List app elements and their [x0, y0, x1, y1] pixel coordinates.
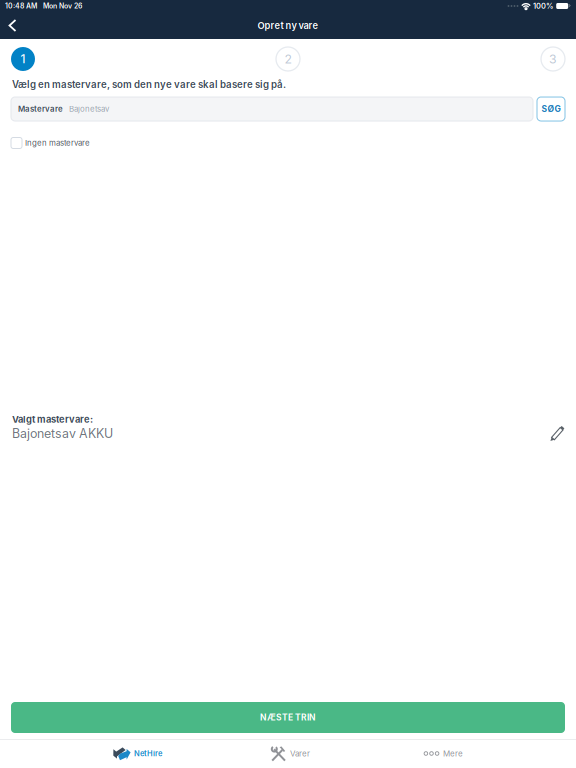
staticText: SØG — [541, 104, 560, 114]
staticText: Opret ny vare — [257, 20, 318, 31]
staticText: Valgt mastervare: — [12, 414, 93, 425]
staticText: NÆSTE TRIN — [260, 712, 316, 723]
staticText: 3 — [549, 52, 557, 66]
staticText: Varer — [290, 749, 310, 758]
button[interactable]: Edit — [548, 417, 567, 437]
staticText: 100% — [533, 1, 553, 10]
staticText: Ingen mastervare — [25, 138, 90, 148]
staticText: 1 — [20, 52, 25, 66]
button[interactable]: SØG — [537, 97, 565, 121]
staticText: Bajonetsav — [69, 104, 109, 114]
staticText: 2 — [284, 52, 291, 66]
button[interactable]: Mere — [367, 739, 520, 767]
staticText: Vælg en mastervare, som den nye vare ska… — [12, 79, 286, 90]
staticText: Mon Nov 26 — [43, 2, 82, 10]
button[interactable]: Back — [0, 12, 23, 38]
staticText: Mastervare — [18, 104, 63, 114]
staticText: Mere — [443, 749, 463, 758]
button[interactable]: Varer — [214, 739, 367, 767]
button[interactable]: NÆSTE TRIN — [11, 702, 565, 733]
button[interactable]: NetHire — [61, 739, 214, 767]
staticText: Bajonetsav AKKU — [12, 426, 113, 441]
staticText: NetHire — [134, 749, 162, 758]
button[interactable]: Ingen mastervare — [11, 137, 90, 149]
staticText: 10:48 AM — [5, 2, 37, 10]
